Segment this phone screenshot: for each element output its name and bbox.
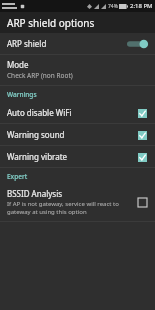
staticText: 74% [108, 3, 118, 10]
staticText: ARP shield options [7, 16, 95, 30]
button[interactable]: BSSID Analysis [0, 184, 155, 221]
staticText: Warnings [7, 90, 37, 99]
staticText: Warning sound [7, 129, 136, 140]
button[interactable]: Disabled [136, 196, 148, 208]
staticText: Warning vibrate [7, 151, 136, 162]
button[interactable]: ARP shield [0, 33, 155, 54]
staticText: ARP shield [7, 38, 127, 49]
staticText: 2:18 PM [130, 2, 153, 10]
button[interactable]: Auto disable WiFi [0, 102, 155, 123]
button[interactable]: Warning vibrate [0, 146, 155, 167]
button[interactable]: Enabled [136, 129, 148, 141]
button[interactable]: Enabled [136, 151, 148, 163]
button[interactable]: Enabled [136, 107, 148, 119]
staticText: If AP is not gateway, service will react… [7, 200, 119, 216]
staticText: Auto disable WiFi [7, 107, 136, 118]
button[interactable]: Warning sound [0, 124, 155, 145]
button[interactable]: Mode [0, 55, 155, 85]
staticText: Check ARP (non Root) [7, 71, 73, 80]
staticText: Expert [7, 172, 28, 181]
staticText: BSSID Analysis [7, 188, 63, 199]
staticText: Mode [7, 59, 29, 70]
